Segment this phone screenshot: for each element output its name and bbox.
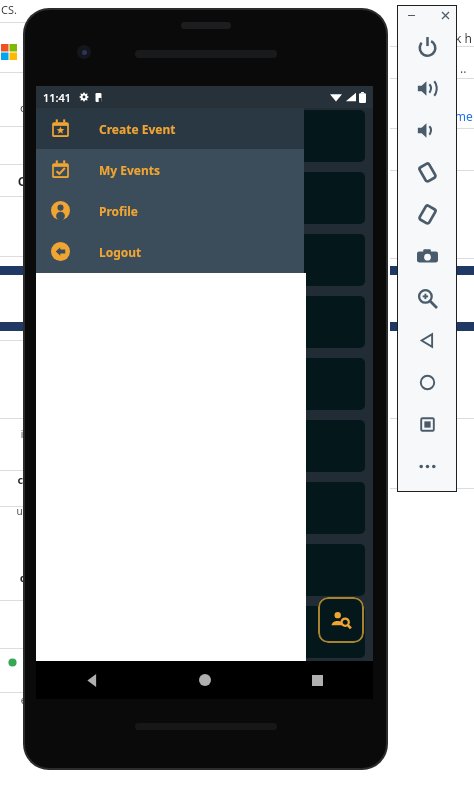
staticText: eme [448, 108, 473, 124]
button[interactable]: Close [438, 8, 452, 22]
button[interactable]: Minimise [404, 8, 418, 22]
button[interactable] [44, 420, 365, 472]
staticText: CS [0, 173, 32, 189]
button[interactable]: Screenshot [397, 235, 457, 277]
button[interactable] [44, 296, 365, 348]
button[interactable] [44, 172, 365, 224]
button[interactable]: More [397, 445, 457, 487]
button[interactable]: Rotate left [397, 151, 457, 193]
button[interactable] [44, 544, 365, 596]
staticText: k h [455, 30, 472, 46]
staticText: ues [0, 504, 33, 518]
button[interactable]: Profile [36, 190, 304, 231]
button[interactable]: Logout [36, 231, 304, 272]
button[interactable]: Recents [261, 661, 373, 699]
staticText: cle [0, 472, 33, 487]
staticText: ire [0, 427, 33, 441]
button[interactable]: Create Event [36, 108, 304, 149]
staticText: dy [0, 570, 33, 585]
button[interactable]: Volume down [397, 109, 457, 151]
button[interactable]: Power [397, 25, 457, 67]
button[interactable] [44, 358, 365, 410]
button[interactable]: Back [36, 661, 149, 699]
button[interactable] [44, 482, 365, 534]
button[interactable]: Home [149, 661, 261, 699]
button[interactable]: Zoom [397, 277, 457, 319]
button[interactable]: Search people [318, 597, 364, 643]
staticText: Create Event [99, 121, 176, 137]
button[interactable] [44, 234, 365, 286]
staticText: .. [460, 60, 467, 76]
button[interactable]: Volume up [397, 67, 457, 109]
button[interactable]: Rotate right [397, 193, 457, 235]
staticText: My Events [99, 162, 161, 178]
staticText: 11:41 [43, 90, 72, 105]
staticText: CS. [1, 2, 17, 17]
staticText: ov [0, 100, 32, 115]
button[interactable]: Overview [397, 403, 457, 445]
button[interactable]: My Events [36, 149, 304, 190]
staticText: Profile [99, 203, 139, 219]
staticText: et [0, 693, 30, 707]
staticText: Logout [99, 244, 142, 260]
button[interactable]: Home [397, 361, 457, 403]
button[interactable] [44, 110, 365, 162]
staticText: u [0, 295, 30, 310]
button[interactable] [44, 606, 365, 658]
button[interactable]: Back [397, 319, 457, 361]
